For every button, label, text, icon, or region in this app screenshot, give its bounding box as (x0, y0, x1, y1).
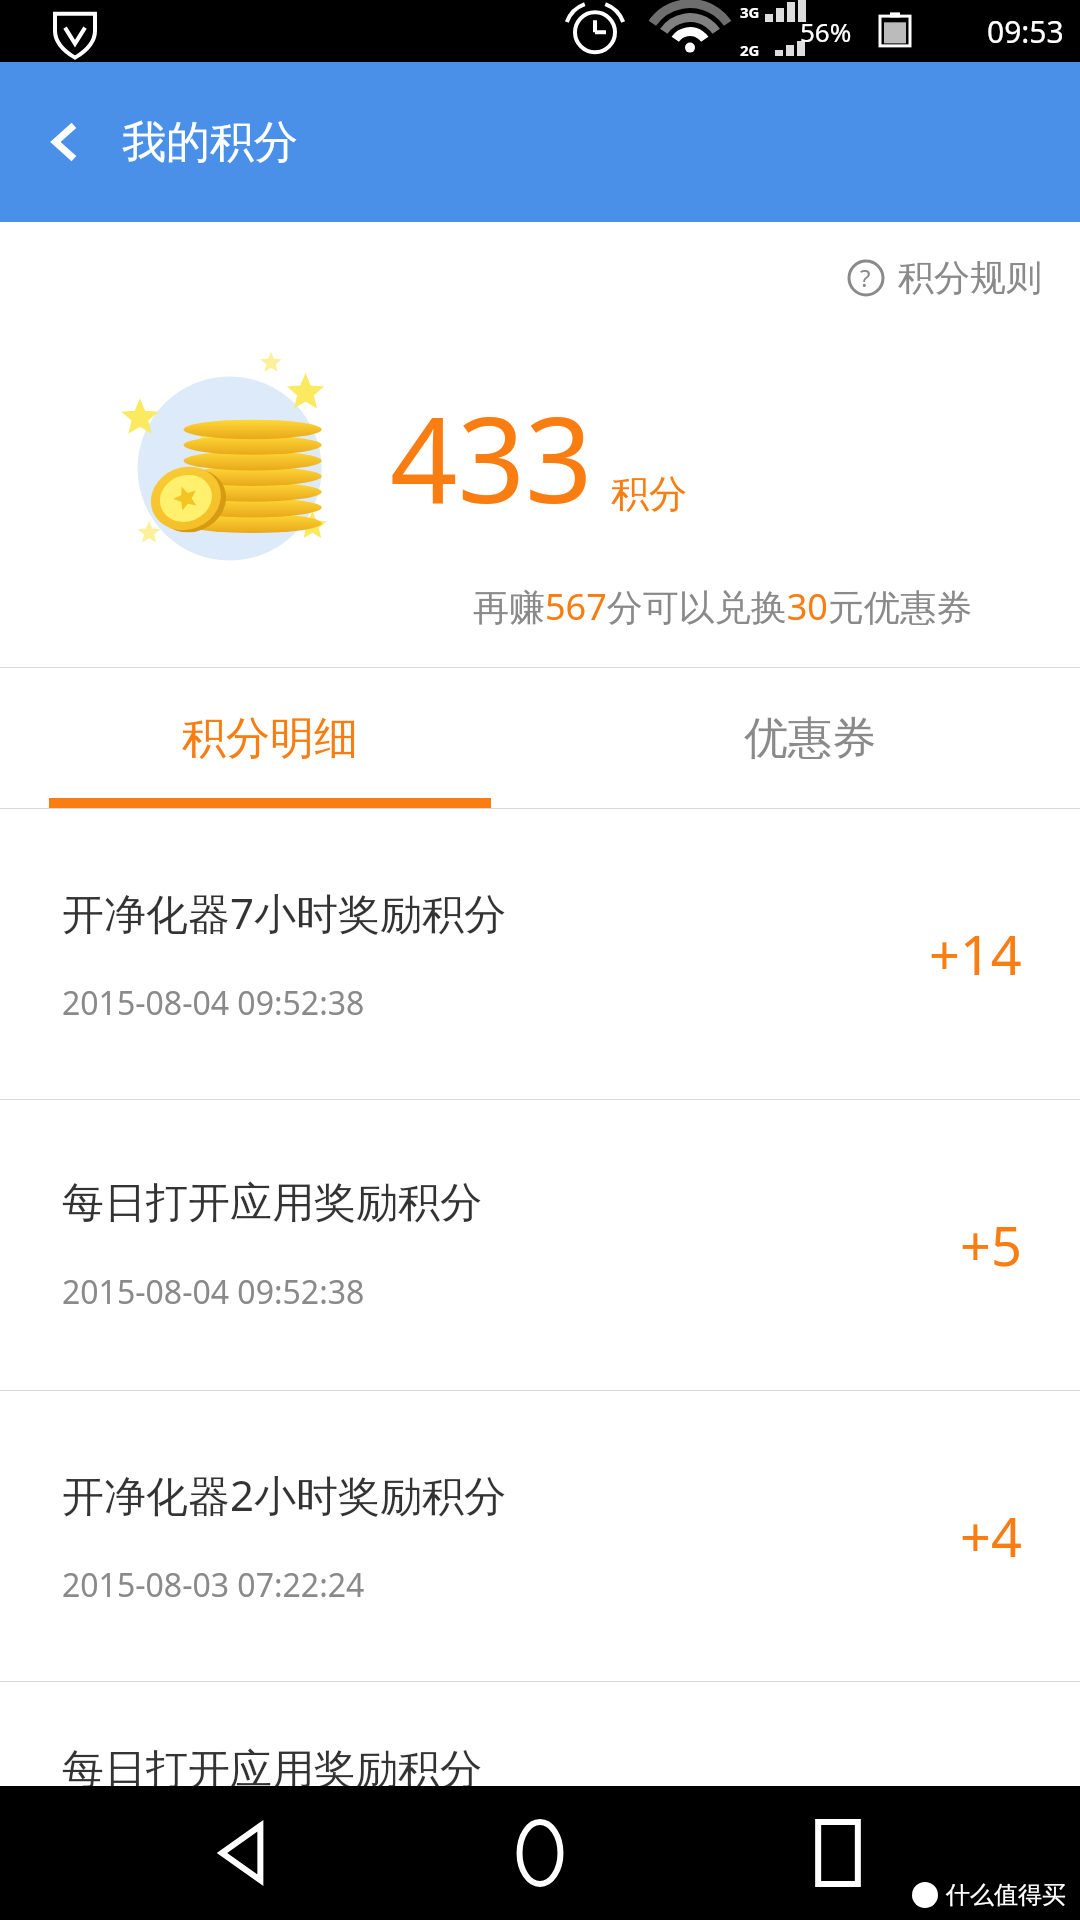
staticText: 积分明细 (182, 711, 358, 766)
staticText: 3G (740, 2, 760, 22)
button[interactable]: Recent apps (783, 1798, 893, 1908)
staticText: 每日打开应用奖励积分 (62, 1177, 482, 1230)
button[interactable]: ? (839, 247, 1050, 308)
staticText: 再赚567分可以兑换30元优惠券 (473, 582, 972, 631)
button[interactable]: 开净化器2小时奖励积分 (0, 1391, 1080, 1681)
staticText: 2G (740, 40, 760, 60)
staticText: +5 (960, 1208, 1022, 1282)
button[interactable]: 优惠券 (540, 668, 1080, 808)
staticText: 什么值得买 (946, 1880, 1066, 1910)
staticText: 优惠券 (744, 711, 876, 766)
staticText: +4 (960, 1499, 1022, 1573)
button[interactable]: 每日打开应用奖励积分 (0, 1100, 1080, 1390)
staticText: 56% (800, 14, 852, 49)
staticText: +14 (929, 917, 1022, 991)
staticText: ? (860, 261, 871, 294)
staticText: 433 (390, 377, 593, 538)
staticText: 2015-08-04 09:52:38 (62, 981, 365, 1025)
button[interactable]: 每日打开应用奖励积分 (0, 1682, 1080, 1786)
button[interactable]: Back (188, 1798, 298, 1908)
button[interactable]: Back (18, 94, 114, 190)
staticText: 积分规则 (898, 255, 1042, 300)
button[interactable]: Home (485, 1798, 595, 1908)
staticText: 09:53 (987, 11, 1064, 52)
staticText: 积分 (611, 470, 687, 518)
staticText: 2015-08-04 09:52:38 (62, 1270, 365, 1314)
staticText: 开净化器2小时奖励积分 (62, 1466, 507, 1523)
button[interactable]: 开净化器7小时奖励积分 (0, 809, 1080, 1099)
staticText: 每日打开应用奖励积分 (62, 1744, 482, 1786)
staticText: 2015-08-03 07:22:24 (62, 1563, 365, 1607)
staticText: 开净化器7小时奖励积分 (62, 884, 507, 941)
button[interactable]: 积分明细 (0, 668, 540, 808)
staticText: 我的积分 (122, 115, 298, 170)
